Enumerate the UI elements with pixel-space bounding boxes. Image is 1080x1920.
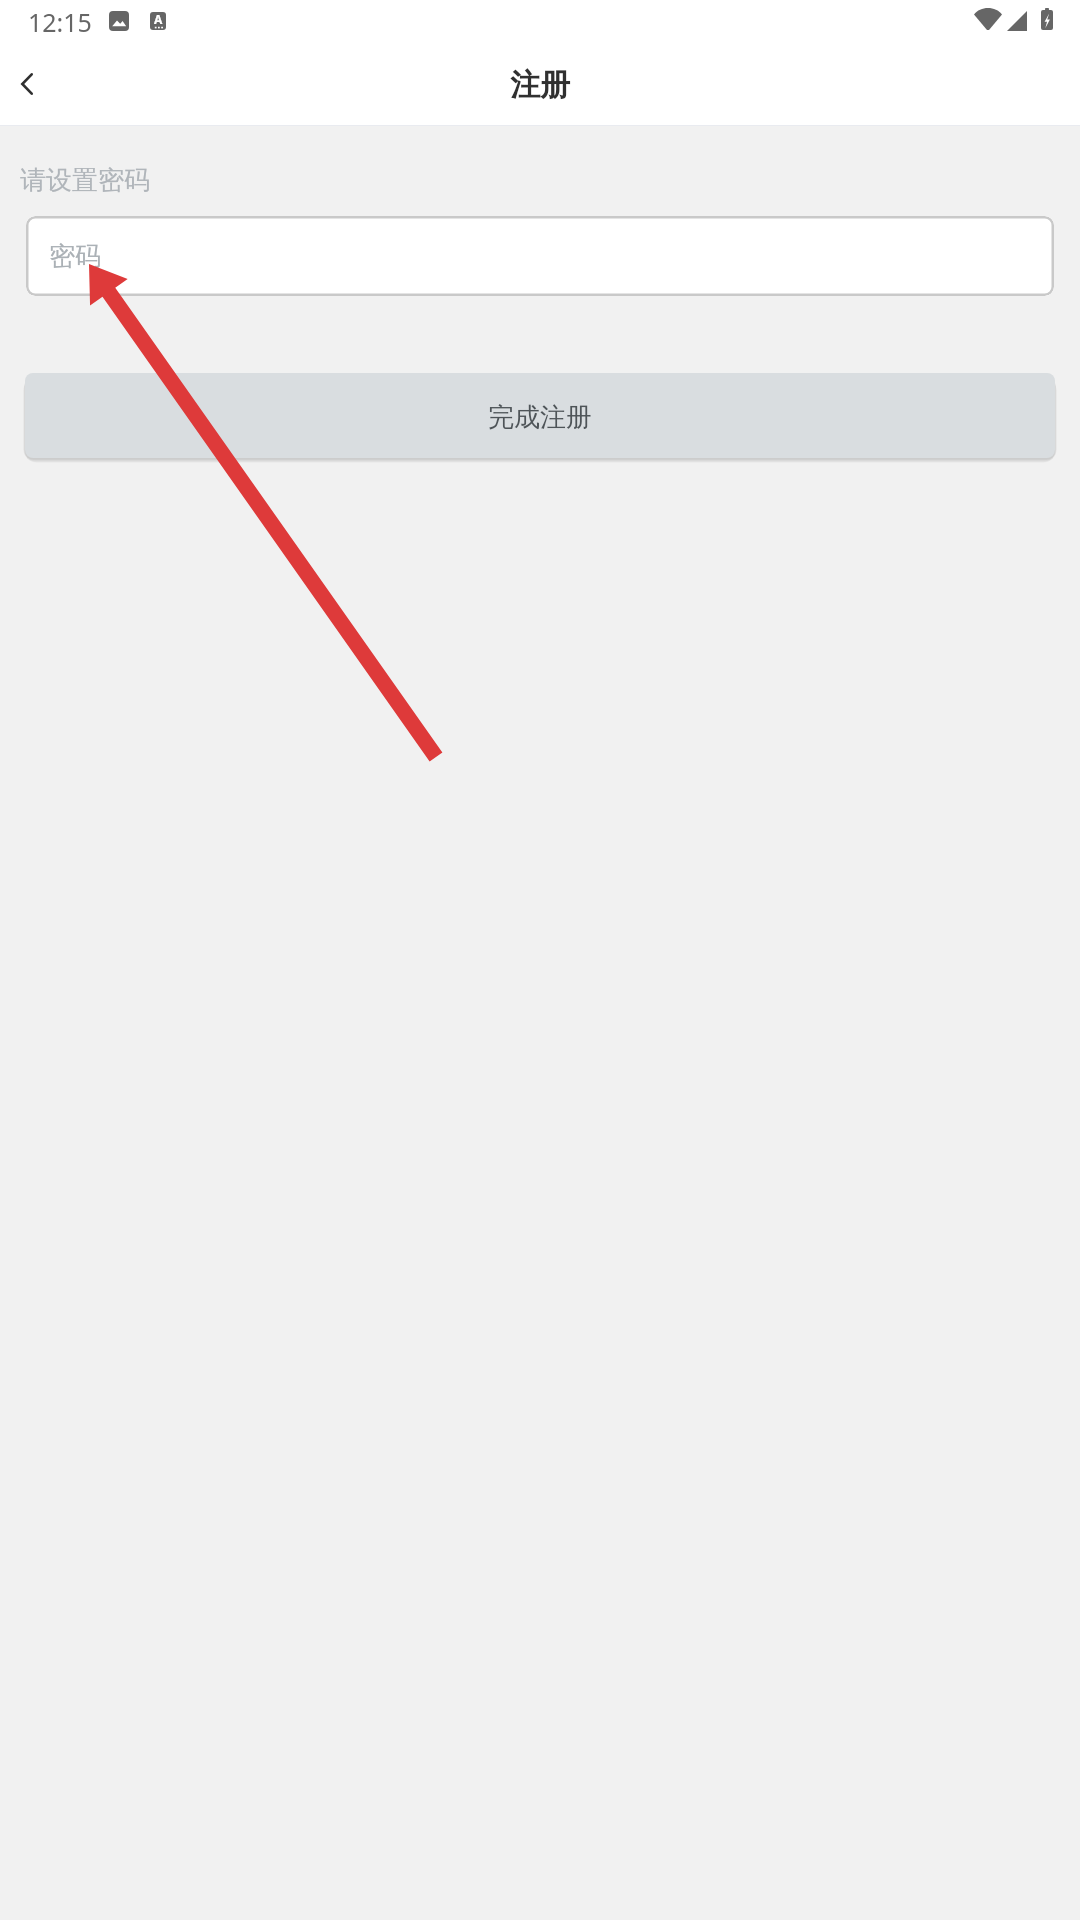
staticText: 完成注册 bbox=[488, 401, 592, 434]
button[interactable]: 完成注册 bbox=[25, 373, 1055, 458]
staticText: 12:15 bbox=[28, 5, 92, 39]
staticText: 密码 bbox=[49, 240, 101, 273]
staticText: 请设置密码 bbox=[20, 164, 150, 197]
button[interactable]: Back bbox=[2, 44, 52, 124]
staticText: 注册 bbox=[510, 66, 570, 104]
staticText: A bbox=[154, 11, 163, 27]
button[interactable]: 密码 bbox=[26, 216, 1054, 296]
